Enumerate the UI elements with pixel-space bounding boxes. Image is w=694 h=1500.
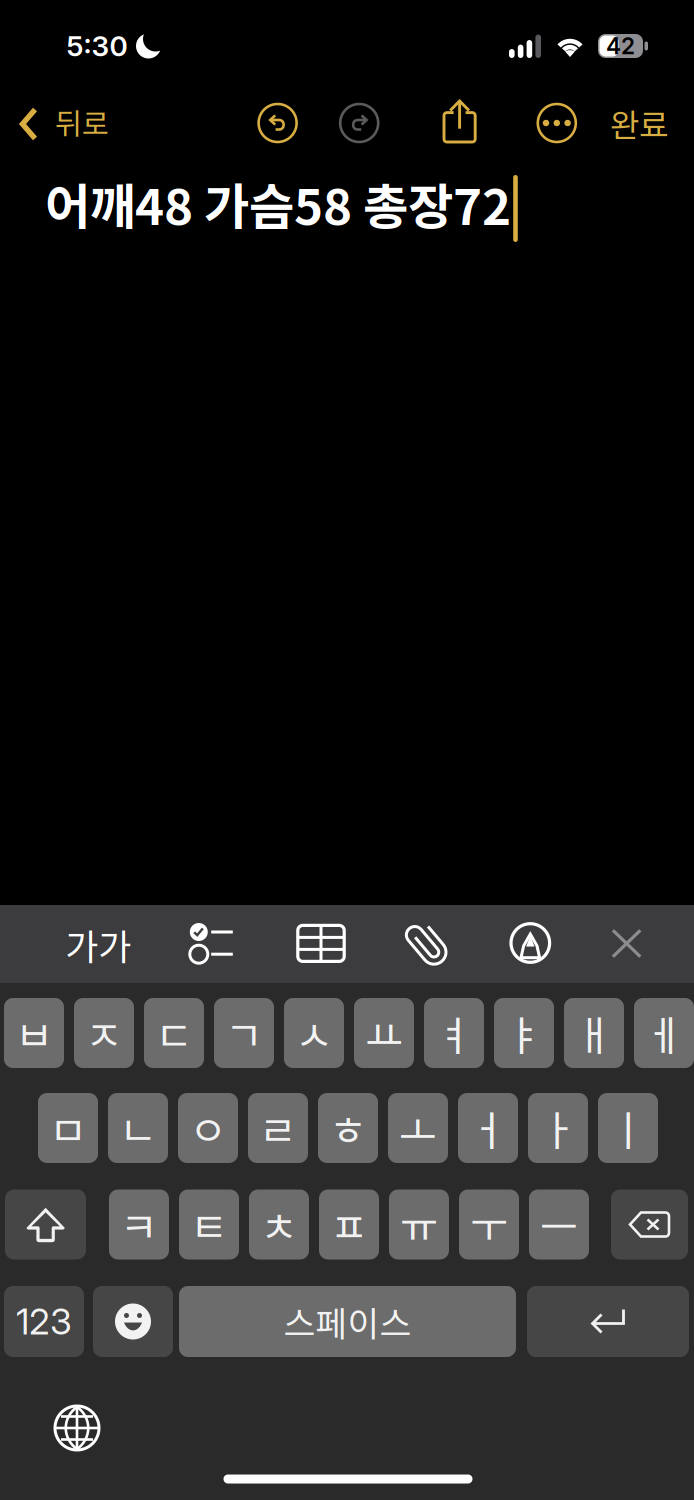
- button[interactable]: Delete: [611, 1189, 688, 1259]
- staticText: 가가: [65, 918, 131, 971]
- button[interactable]: ㅎ: [318, 1093, 378, 1163]
- staticText: 뒤로: [55, 101, 109, 143]
- button[interactable]: ㄴ: [108, 1093, 168, 1163]
- button[interactable]: ㅁ: [38, 1093, 98, 1163]
- staticText: 123: [16, 1300, 72, 1343]
- button[interactable]: Share: [438, 96, 482, 146]
- button[interactable]: Attach: [404, 920, 452, 968]
- button[interactable]: ㄷ: [144, 998, 204, 1068]
- button[interactable]: ㅗ: [388, 1093, 448, 1163]
- staticText: ㅡ: [540, 1195, 578, 1254]
- button[interactable]: Shift: [5, 1189, 86, 1259]
- staticText: 42: [606, 32, 635, 60]
- staticText: ㅐ: [575, 1003, 613, 1063]
- staticText: ㅠ: [400, 1195, 438, 1254]
- staticText: ㅕ: [435, 1003, 473, 1063]
- staticText: ㄷ: [155, 1003, 193, 1063]
- button[interactable]: ㅠ: [389, 1189, 449, 1259]
- staticText: ㄹ: [259, 1098, 297, 1158]
- button[interactable]: 가가: [60, 919, 136, 971]
- button[interactable]: 123: [4, 1286, 84, 1357]
- button[interactable]: More: [534, 100, 580, 146]
- staticText: ㅣ: [609, 1098, 647, 1158]
- staticText: ㅎ: [329, 1098, 367, 1158]
- button[interactable]: ㅐ: [564, 998, 624, 1068]
- staticText: ㅊ: [260, 1195, 298, 1254]
- button[interactable]: ㅇ: [178, 1093, 238, 1163]
- staticText: ㅑ: [505, 1003, 543, 1063]
- staticText: ㅂ: [15, 1003, 53, 1063]
- button[interactable]: ㅅ: [284, 998, 344, 1068]
- button[interactable]: Emoji: [93, 1286, 173, 1357]
- button[interactable]: ㅛ: [354, 998, 414, 1068]
- staticText: ㅌ: [190, 1195, 228, 1254]
- button[interactable]: Redo: [336, 100, 382, 146]
- button[interactable]: ㄱ: [214, 998, 274, 1068]
- button[interactable]: ㅈ: [74, 998, 134, 1068]
- button[interactable]: ㅏ: [528, 1093, 588, 1163]
- staticText: 5:30: [66, 29, 127, 63]
- staticText: ㅋ: [120, 1195, 158, 1254]
- button[interactable]: ㄹ: [248, 1093, 308, 1163]
- staticText: ㅔ: [645, 1003, 683, 1063]
- button[interactable]: Markup: [507, 920, 553, 966]
- staticText: ㅁ: [49, 1098, 87, 1158]
- staticText: 완료: [610, 100, 668, 146]
- staticText: ㅍ: [330, 1195, 368, 1254]
- button[interactable]: ㅓ: [458, 1093, 518, 1163]
- button[interactable]: Table: [295, 921, 347, 965]
- button[interactable]: ㅡ: [529, 1189, 589, 1259]
- button[interactable]: Checklist: [190, 921, 236, 965]
- button[interactable]: 뒤로: [0, 98, 108, 150]
- button[interactable]: ㅣ: [598, 1093, 658, 1163]
- staticText: ㅗ: [399, 1098, 437, 1158]
- staticText: 스페이스: [283, 1296, 411, 1347]
- button[interactable]: ㅌ: [179, 1189, 239, 1259]
- staticText: ㄴ: [119, 1098, 157, 1158]
- button[interactable]: ㅋ: [109, 1189, 169, 1259]
- button[interactable]: ㅊ: [249, 1189, 309, 1259]
- button[interactable]: ㅑ: [494, 998, 554, 1068]
- button[interactable]: Next keyboard: [51, 1402, 103, 1454]
- button[interactable]: 스페이스: [179, 1286, 516, 1357]
- staticText: ㅏ: [539, 1098, 577, 1158]
- staticText: ㅇ: [189, 1098, 227, 1158]
- button[interactable]: ㅜ: [459, 1189, 519, 1259]
- staticText: 어깨48 가슴58 총장72: [45, 168, 511, 239]
- button[interactable]: ㅍ: [319, 1189, 379, 1259]
- button[interactable]: Hide keyboard: [605, 921, 649, 965]
- staticText: ㅅ: [295, 1003, 333, 1063]
- staticText: ㅈ: [85, 1003, 123, 1063]
- staticText: ㅜ: [470, 1195, 508, 1254]
- button[interactable]: Undo: [255, 100, 301, 146]
- button[interactable]: ㅂ: [4, 998, 64, 1068]
- button[interactable]: Return: [527, 1286, 689, 1357]
- button[interactable]: 완료: [604, 94, 674, 152]
- staticText: ㄱ: [225, 1003, 263, 1063]
- button[interactable]: ㅔ: [634, 998, 694, 1068]
- button[interactable]: ㅕ: [424, 998, 484, 1068]
- staticText: ㅓ: [469, 1098, 507, 1158]
- staticText: ㅛ: [365, 1003, 403, 1063]
